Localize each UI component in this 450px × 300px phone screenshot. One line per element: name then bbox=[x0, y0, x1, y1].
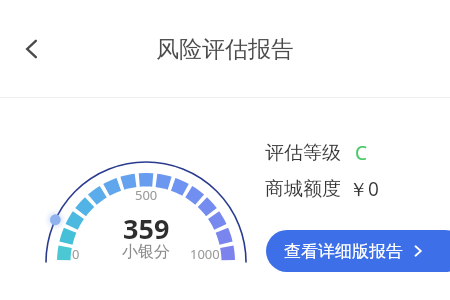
button[interactable]: 查看详细版报告 bbox=[266, 230, 450, 272]
staticText: 小银分 bbox=[122, 242, 170, 262]
staticText: 500 bbox=[135, 186, 158, 204]
staticText: 商城额度 bbox=[265, 177, 341, 201]
button[interactable]: Back bbox=[8, 25, 56, 73]
staticText: 359 bbox=[123, 210, 170, 247]
staticText: 评估等级 bbox=[265, 141, 341, 165]
staticText: 查看详细版报告 bbox=[284, 241, 403, 262]
staticText: 风险评估报告 bbox=[156, 35, 294, 64]
staticText: C bbox=[355, 140, 368, 166]
staticText: 0 bbox=[72, 245, 80, 263]
staticText: 1000 bbox=[190, 245, 220, 263]
staticText: ￥0 bbox=[349, 176, 379, 202]
